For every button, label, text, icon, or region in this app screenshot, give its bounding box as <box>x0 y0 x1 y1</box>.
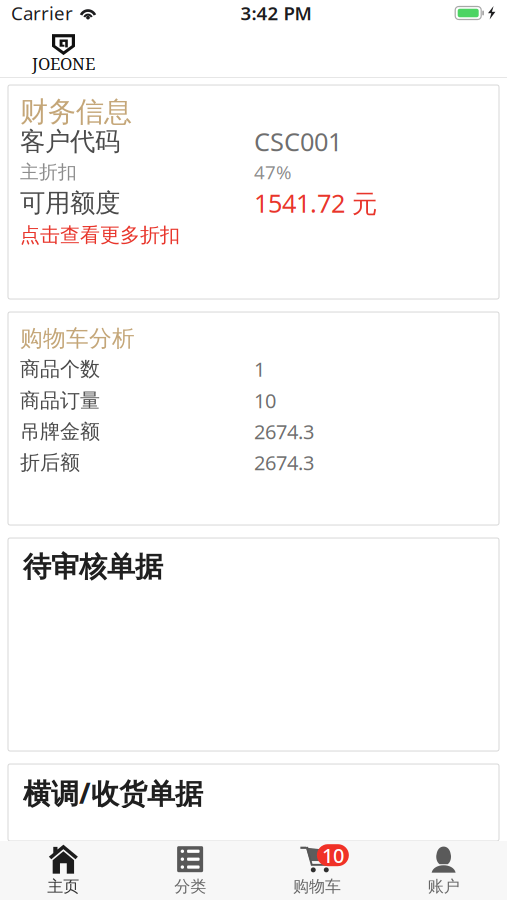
staticText: 主折扣 <box>20 160 77 183</box>
staticText: 主页 <box>47 877 79 896</box>
staticText: 横调/收货单据 <box>23 774 203 812</box>
staticText: 商品订量 <box>20 388 100 413</box>
staticText: 待审核单据 <box>23 550 163 584</box>
staticText: 10 <box>322 842 344 868</box>
staticText: 分类 <box>174 877 206 896</box>
staticText: 购物车分析 <box>20 325 135 352</box>
staticText: 购物车 <box>293 877 341 896</box>
button[interactable]: 账户 <box>380 841 507 899</box>
staticText: 折后额 <box>20 450 80 475</box>
button[interactable]: 点击查看更多折扣 <box>20 218 499 252</box>
staticText: 1 <box>254 356 265 382</box>
staticText: 2674.3 <box>254 449 314 476</box>
staticText: 客户代码 <box>20 126 120 157</box>
button[interactable]: 主页 <box>0 841 127 899</box>
staticText: 3:42 PM <box>241 1 312 25</box>
staticText: 10 <box>254 387 276 414</box>
staticText: 点击查看更多折扣 <box>20 223 180 247</box>
staticText: Carrier <box>11 1 73 25</box>
staticText: CSC001 <box>254 125 342 158</box>
button[interactable]: 分类 <box>127 841 254 899</box>
staticText: 财务信息 <box>20 95 132 129</box>
staticText: 47% <box>254 160 292 184</box>
staticText: 商品个数 <box>20 357 100 381</box>
staticText: 可用额度 <box>20 187 120 218</box>
button[interactable]: 10 <box>253 841 380 899</box>
staticText: 吊牌金额 <box>20 419 100 444</box>
staticText: 1541.72 元 <box>254 186 377 220</box>
button[interactable]: JOEONE home <box>32 26 95 75</box>
staticText: JOEONE <box>32 52 95 75</box>
staticText: 2674.3 <box>254 418 314 445</box>
staticText: 账户 <box>428 877 460 896</box>
